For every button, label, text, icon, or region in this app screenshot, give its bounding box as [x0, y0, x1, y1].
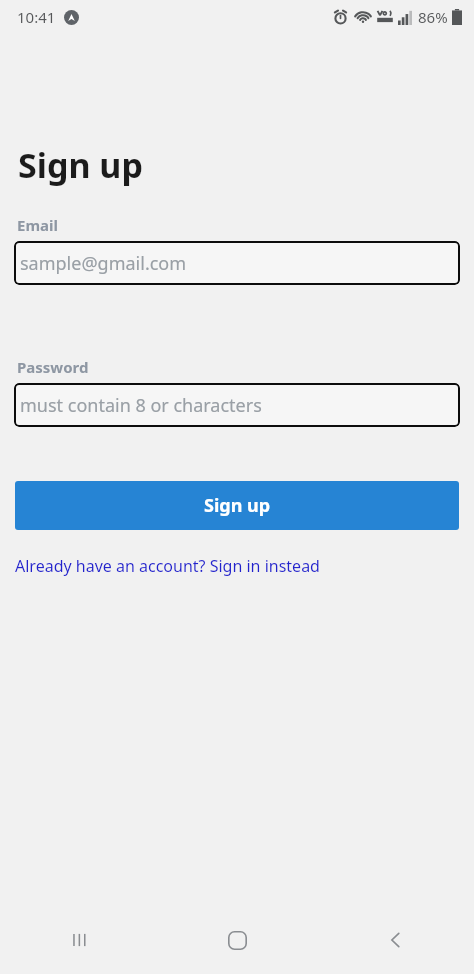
- staticText: sample@gmail.com: [20, 251, 187, 276]
- staticText: Sign up: [204, 493, 271, 518]
- button[interactable]: Recent apps: [0, 906, 158, 974]
- staticText: 86%: [418, 7, 448, 27]
- staticText: Already have an account? Sign in instead: [15, 555, 320, 577]
- staticText: Sign up: [18, 142, 143, 188]
- button[interactable]: Sign up: [15, 481, 459, 530]
- button[interactable]: Back: [316, 906, 474, 974]
- staticText: Password: [17, 357, 89, 377]
- button[interactable]: Already have an account? Sign in instead: [15, 553, 320, 579]
- staticText: 10:41: [17, 7, 56, 27]
- staticText: must contain 8 or characters: [20, 393, 262, 418]
- button[interactable]: Home: [158, 906, 316, 974]
- button[interactable]: sample@gmail.com: [14, 241, 460, 285]
- button[interactable]: must contain 8 or characters: [14, 383, 460, 427]
- staticText: Email: [17, 215, 58, 235]
